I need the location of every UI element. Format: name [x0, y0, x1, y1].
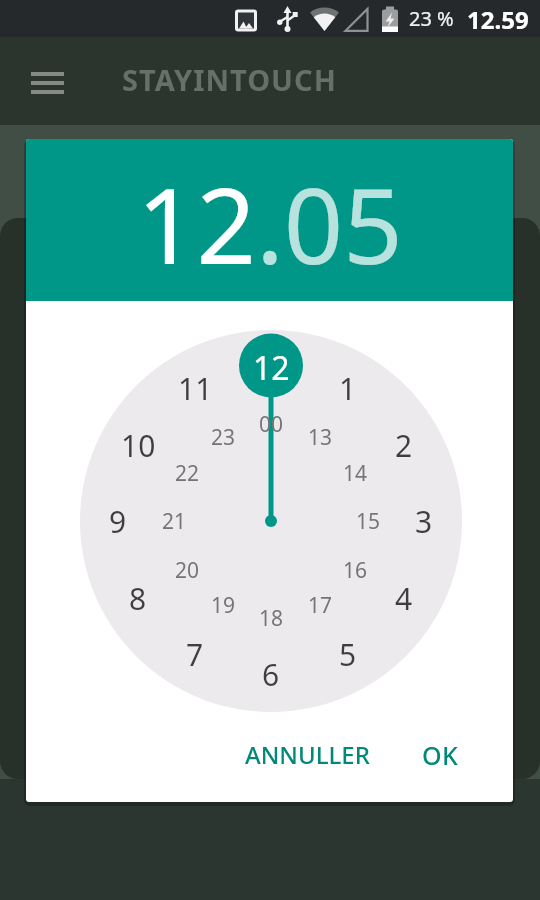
button[interactable]: 17 — [290, 583, 350, 627]
button[interactable]: 20 — [157, 548, 217, 592]
button[interactable] — [22, 66, 72, 100]
staticText: 5 — [339, 634, 357, 675]
staticText: 11 — [178, 368, 213, 409]
staticText: STAYINTOUCH — [122, 60, 337, 99]
button[interactable]: 5 — [318, 632, 378, 676]
staticText: 15 — [356, 507, 381, 536]
staticText: 10 — [121, 425, 156, 466]
staticText: 2 — [395, 425, 413, 466]
staticText: 13 — [308, 423, 333, 452]
button[interactable]: 3 — [394, 499, 454, 543]
staticText: 00 — [259, 410, 284, 439]
staticText: ANNULLER — [245, 738, 370, 771]
button[interactable]: 2 — [374, 423, 434, 467]
button[interactable]: 4 — [374, 576, 434, 620]
staticText: 6 — [262, 654, 280, 695]
staticText: 8 — [129, 578, 147, 619]
staticText: 17 — [308, 591, 333, 620]
staticText: 9 — [109, 501, 127, 542]
button[interactable]: ANNULLER — [233, 727, 381, 782]
button[interactable]: 12 — [241, 346, 301, 390]
button[interactable]: 23 — [193, 415, 253, 459]
staticText: 3 — [415, 501, 433, 542]
button[interactable]: 7 — [165, 632, 225, 676]
staticText: 14 — [343, 459, 368, 488]
button[interactable]: 18 — [241, 596, 301, 640]
staticText: 4 — [395, 578, 413, 619]
staticText: 1 — [339, 368, 357, 409]
button[interactable]: OK — [398, 727, 483, 782]
staticText: 23 % — [409, 5, 454, 32]
button[interactable]: 21 — [144, 499, 204, 543]
button[interactable]: 00 — [241, 402, 301, 446]
staticText: 23 — [211, 423, 236, 452]
button[interactable]: 9 — [88, 499, 148, 543]
button[interactable]: 8 — [108, 576, 168, 620]
staticText: 7 — [186, 634, 204, 675]
button[interactable]: 15 — [338, 499, 398, 543]
button[interactable]: 6 — [241, 652, 301, 696]
staticText: 12.05 — [137, 153, 403, 295]
button[interactable]: 16 — [325, 548, 385, 592]
button[interactable]: 13 — [290, 415, 350, 459]
button[interactable]: 14 — [325, 451, 385, 495]
staticText: 16 — [343, 556, 368, 585]
button[interactable]: 10 — [108, 423, 168, 467]
staticText: 22 — [175, 459, 200, 488]
staticText: 18 — [259, 604, 284, 633]
staticText: 12.59 — [467, 3, 529, 36]
staticText: 12 — [253, 346, 290, 390]
button[interactable]: 19 — [193, 583, 253, 627]
staticText: 20 — [175, 556, 200, 585]
staticText: 21 — [162, 507, 187, 536]
staticText: OK — [422, 738, 459, 772]
button[interactable]: 22 — [157, 451, 217, 495]
button[interactable]: 11 — [165, 366, 225, 410]
button[interactable]: 1 — [318, 366, 378, 410]
staticText: 19 — [211, 591, 236, 620]
